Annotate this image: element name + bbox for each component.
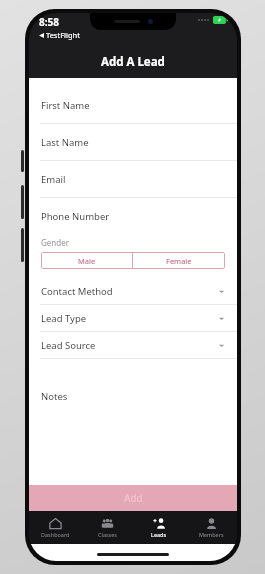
staticText: Notes (41, 390, 68, 403)
staticText: Leads (151, 531, 167, 538)
staticText: Add A Lead (101, 54, 165, 70)
button[interactable]: Male (41, 252, 132, 269)
staticText: Add (124, 491, 143, 505)
button[interactable]: Lead Type (29, 305, 237, 332)
staticText: Gender (41, 237, 70, 248)
staticText: Contact Method (41, 285, 113, 298)
staticText: Phone Number (41, 210, 110, 223)
button[interactable]: Dashboard (29, 511, 81, 544)
staticText: Classes (98, 531, 117, 538)
button[interactable]: Notes (29, 381, 237, 411)
button[interactable]: First Name (29, 87, 237, 124)
staticText: First Name (41, 99, 90, 112)
button[interactable]: Phone Number (29, 198, 237, 237)
button[interactable]: Female (133, 252, 225, 269)
button[interactable]: Lead Source (29, 332, 237, 359)
button[interactable]: Classes (81, 511, 133, 544)
staticText: Male (78, 256, 96, 266)
staticText: Female (166, 256, 192, 266)
button[interactable]: Email (29, 161, 237, 198)
staticText: Lead Type (41, 312, 87, 325)
staticText: Members (199, 531, 224, 538)
staticText: Last Name (41, 136, 89, 149)
button[interactable]: Members (185, 511, 237, 544)
staticText: Email (41, 173, 66, 186)
staticText: TestFlight (46, 30, 80, 40)
button[interactable]: Contact Method (29, 278, 237, 305)
button[interactable]: Leads (133, 511, 185, 544)
staticText: Dashboard (41, 531, 70, 538)
button[interactable]: Last Name (29, 124, 237, 161)
staticText: Lead Source (41, 339, 96, 352)
staticText: 8:58 (39, 15, 59, 29)
